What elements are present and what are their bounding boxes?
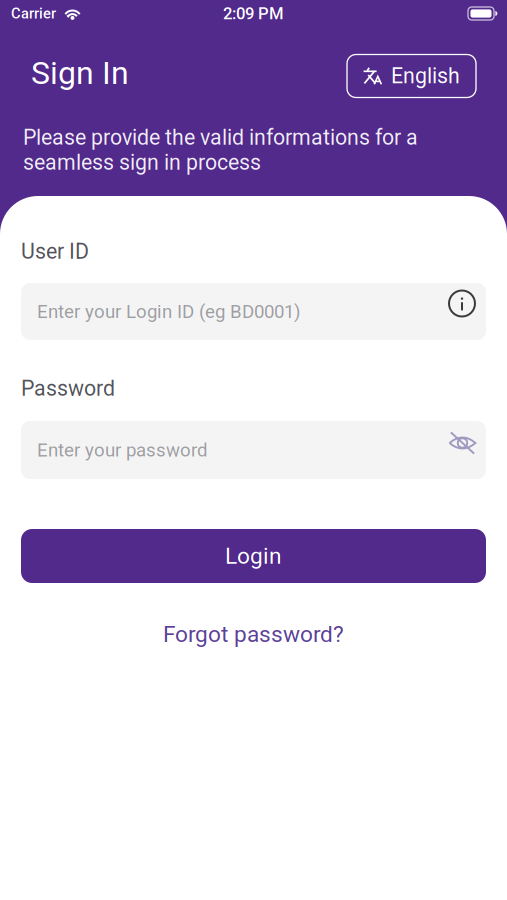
staticText: Forgot password? xyxy=(163,621,344,648)
staticText: Carrier xyxy=(11,5,56,22)
staticText: Enter your password xyxy=(37,439,208,461)
staticText: English xyxy=(391,63,460,88)
staticText: Login xyxy=(225,543,282,569)
staticText: Please provide the valid informations fo… xyxy=(23,125,418,175)
staticText: 2:09 PM xyxy=(223,4,284,23)
button[interactable]: Forgot password? xyxy=(163,583,344,648)
staticText: User ID xyxy=(21,239,89,264)
staticText: Enter your Login ID (eg BD0001) xyxy=(37,301,300,322)
staticText: Sign In xyxy=(31,54,129,92)
button[interactable]: English xyxy=(347,48,476,97)
staticText: Password xyxy=(21,376,115,401)
button[interactable]: Login xyxy=(0,479,507,583)
